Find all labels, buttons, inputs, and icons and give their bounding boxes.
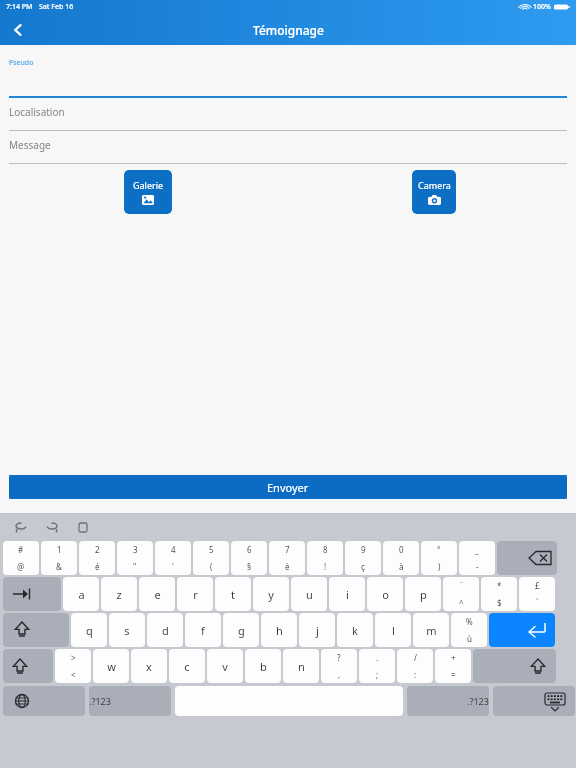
staticText: + <box>451 652 456 663</box>
staticText: m <box>426 623 437 638</box>
button[interactable]: .?123 <box>89 686 171 716</box>
button[interactable]: _ <box>459 541 495 575</box>
staticText: 100% <box>533 2 551 12</box>
staticText: 3 <box>133 544 138 555</box>
button[interactable]: c <box>169 649 205 683</box>
button[interactable]: Galerie <box>124 170 172 214</box>
staticText: b <box>260 659 267 674</box>
button[interactable]: j <box>299 613 335 647</box>
staticText: z <box>116 587 122 602</box>
staticText: x <box>146 659 152 674</box>
button[interactable]: / <box>397 649 433 683</box>
button[interactable]: > <box>55 649 91 683</box>
button[interactable]: * <box>481 577 517 611</box>
button[interactable]: 5 <box>193 541 229 575</box>
button[interactable]: . <box>359 649 395 683</box>
staticText: ¨ <box>459 580 464 591</box>
staticText: £ <box>535 580 540 591</box>
staticText: $ <box>497 597 502 608</box>
button[interactable]: 7 <box>269 541 305 575</box>
staticText: à <box>399 561 404 572</box>
button[interactable]: Return <box>489 613 555 647</box>
staticText: . <box>376 652 379 663</box>
staticText: j <box>316 623 319 638</box>
staticText: § <box>247 561 252 572</box>
button[interactable]: u <box>291 577 327 611</box>
button[interactable]: v <box>207 649 243 683</box>
button[interactable]: t <box>215 577 251 611</box>
button[interactable]: Back <box>5 17 31 43</box>
button[interactable]: z <box>101 577 137 611</box>
staticText: g <box>238 623 245 638</box>
button[interactable]: g <box>223 613 259 647</box>
staticText: d <box>162 623 169 638</box>
button[interactable]: .?123 <box>407 686 489 716</box>
button[interactable]: 4 <box>155 541 191 575</box>
staticText: ç <box>361 561 365 572</box>
button[interactable]: Message <box>9 131 567 164</box>
button[interactable]: 8 <box>307 541 343 575</box>
button[interactable]: e <box>139 577 175 611</box>
button[interactable]: Shift <box>3 649 53 683</box>
button[interactable]: Tab <box>3 577 61 611</box>
staticText: n <box>298 659 305 674</box>
staticText: v <box>222 659 228 674</box>
button[interactable]: w <box>93 649 129 683</box>
button[interactable]: + <box>435 649 471 683</box>
button[interactable]: 6 <box>231 541 267 575</box>
button[interactable]: f <box>185 613 221 647</box>
staticText: < <box>71 669 76 680</box>
button[interactable]: s <box>109 613 145 647</box>
button[interactable]: h <box>261 613 297 647</box>
button[interactable]: Caps lock <box>3 613 69 647</box>
button[interactable]: n <box>283 649 319 683</box>
button[interactable]: Localisation <box>9 98 567 131</box>
button[interactable]: Undo <box>10 516 32 538</box>
staticText: # <box>18 544 24 555</box>
staticText: ' <box>172 561 174 572</box>
button[interactable]: m <box>413 613 449 647</box>
button[interactable]: 2 <box>79 541 115 575</box>
button[interactable]: 1 <box>41 541 77 575</box>
staticText: .?123 <box>89 695 111 707</box>
button[interactable]: l <box>375 613 411 647</box>
button[interactable]: q <box>71 613 107 647</box>
button[interactable]: Redo <box>41 516 63 538</box>
button[interactable]: y <box>253 577 289 611</box>
button[interactable]: # <box>3 541 39 575</box>
button[interactable]: Language <box>3 686 85 716</box>
button[interactable]: 9 <box>345 541 381 575</box>
button[interactable]: £ <box>519 577 555 611</box>
button[interactable]: r <box>177 577 213 611</box>
staticText: a <box>78 587 85 602</box>
button[interactable]: p <box>405 577 441 611</box>
button[interactable]: k <box>337 613 373 647</box>
button[interactable]: 0 <box>383 541 419 575</box>
staticText: .?123 <box>467 695 489 707</box>
button[interactable]: ° <box>421 541 457 575</box>
button[interactable]: Backspace <box>497 541 557 575</box>
button[interactable]: Envoyer <box>9 475 567 499</box>
staticText: Galerie <box>133 179 164 191</box>
button[interactable]: ¨ <box>443 577 479 611</box>
button[interactable]: Camera <box>412 170 456 214</box>
staticText: Camera <box>418 179 451 191</box>
button[interactable]: Pseudo <box>9 56 567 98</box>
button[interactable]: ? <box>321 649 357 683</box>
staticText: : <box>414 669 417 680</box>
staticText: o <box>382 587 389 602</box>
button[interactable]: Hide keyboard <box>493 686 575 716</box>
button[interactable]: % <box>451 613 487 647</box>
staticText: u <box>306 587 313 602</box>
button[interactable]: x <box>131 649 167 683</box>
button[interactable]: a <box>63 577 99 611</box>
button[interactable]: Shift <box>473 649 556 683</box>
button[interactable]: Paste <box>72 516 94 538</box>
button[interactable]: b <box>245 649 281 683</box>
button[interactable]: 3 <box>117 541 153 575</box>
staticText: k <box>352 623 358 638</box>
button[interactable]: o <box>367 577 403 611</box>
button[interactable]: d <box>147 613 183 647</box>
button[interactable]: i <box>329 577 365 611</box>
